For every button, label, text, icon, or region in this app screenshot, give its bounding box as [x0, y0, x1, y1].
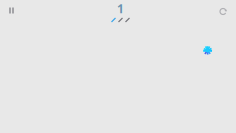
- staticText: 1: [117, 0, 124, 16]
- button[interactable]: Pause: [0, 0, 22, 21]
- button[interactable]: Refresh: [211, 0, 236, 21]
